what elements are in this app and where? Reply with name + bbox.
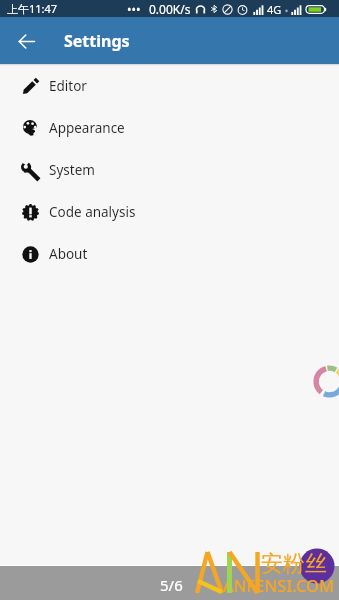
staticText: System bbox=[49, 161, 95, 179]
staticText: Appearance bbox=[49, 119, 125, 137]
staticText: Settings bbox=[64, 30, 130, 52]
button[interactable]: Back bbox=[10, 25, 42, 57]
staticText: ••• bbox=[127, 1, 141, 17]
button[interactable]: About bbox=[0, 233, 339, 275]
staticText: 上午11:47 bbox=[7, 1, 58, 16]
staticText: 4G bbox=[267, 2, 282, 17]
staticText: Editor bbox=[49, 77, 87, 95]
staticText: ANFENSI.COM bbox=[223, 574, 335, 596]
button[interactable]: System bbox=[0, 149, 339, 191]
staticText: 安粉丝 bbox=[261, 550, 327, 578]
staticText: 0.00K/s bbox=[149, 1, 191, 17]
button[interactable]: Editor bbox=[0, 65, 339, 107]
staticText: Code analysis bbox=[49, 203, 136, 221]
staticText: 5/6 bbox=[160, 575, 183, 595]
staticText: About bbox=[49, 245, 88, 263]
button[interactable]: Appearance bbox=[0, 107, 339, 149]
button[interactable]: Code analysis bbox=[0, 191, 339, 233]
